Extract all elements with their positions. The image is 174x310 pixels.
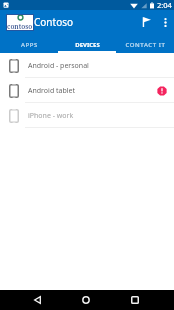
button[interactable]: CONTACT IT	[116, 34, 174, 53]
button[interactable]: Back	[13, 290, 61, 310]
staticText: Android tablet	[28, 86, 76, 96]
staticText: DEVICES	[75, 41, 100, 49]
staticText: CONTACT IT	[125, 41, 166, 49]
button[interactable]: Flag	[136, 12, 156, 32]
button[interactable]: iPhone - work	[0, 103, 174, 128]
button[interactable]: More options	[156, 13, 174, 31]
staticText: contoso	[7, 22, 33, 30]
staticText: APPS	[21, 41, 38, 49]
button[interactable]: Home	[61, 290, 110, 310]
button[interactable]: Android tablet	[0, 78, 174, 103]
staticText: Android - personal	[28, 61, 89, 71]
staticText: iPhone - work	[28, 111, 74, 121]
button[interactable]: Android - personal	[0, 53, 174, 78]
button[interactable]: DEVICES	[58, 34, 116, 53]
staticText: Contoso	[34, 15, 74, 29]
staticText: 2:04	[157, 0, 172, 10]
button[interactable]: Recents	[110, 290, 159, 310]
button[interactable]: APPS	[0, 34, 58, 53]
